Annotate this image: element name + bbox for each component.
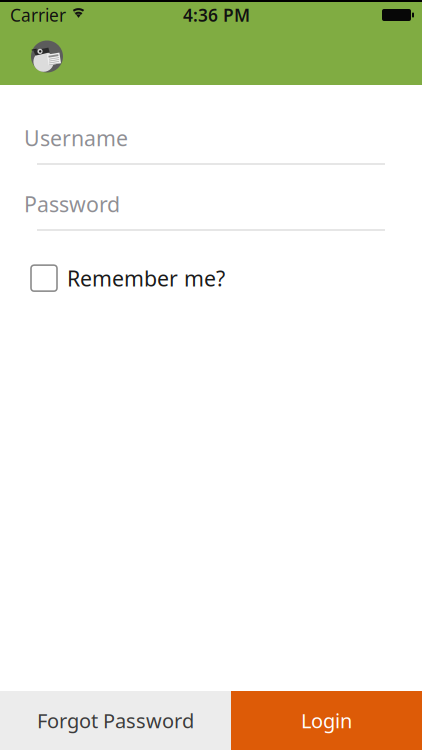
button[interactable]: Login [231, 691, 422, 750]
staticText: Remember me? [67, 264, 225, 292]
button[interactable]: Username [24, 128, 385, 165]
staticText: Carrier [10, 3, 66, 26]
button[interactable]: Password [24, 194, 385, 231]
staticText: Password [24, 190, 120, 218]
staticText: 4:36 PM [183, 3, 250, 26]
button[interactable]: Remember me? [24, 264, 385, 292]
button[interactable]: Forgot Password [0, 691, 231, 750]
staticText: Login [301, 707, 352, 734]
button[interactable]: Home [31, 40, 64, 73]
staticText: Forgot Password [37, 707, 194, 734]
staticText: Username [24, 124, 128, 152]
